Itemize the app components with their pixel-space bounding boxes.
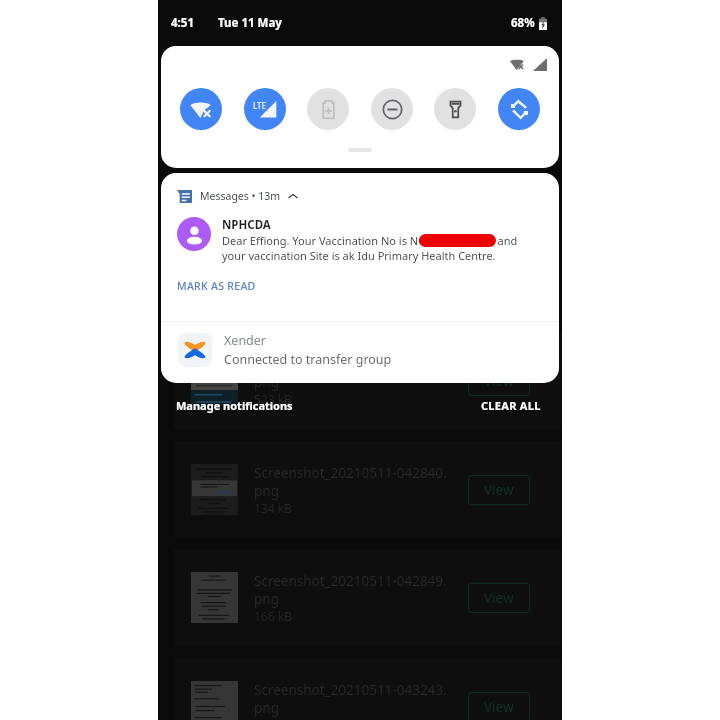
staticText: View (484, 481, 514, 499)
staticText: NPHCDA (222, 217, 271, 233)
staticText: Dear Effiong. Your Vaccination No is NG0… (222, 233, 518, 248)
staticText: Messages • 13m (200, 189, 281, 203)
button[interactable]: View (468, 366, 530, 396)
staticText: png (254, 482, 279, 500)
button[interactable]: CLEAR ALL (481, 398, 541, 413)
button[interactable]: Screenshot_20210511-042849. (174, 549, 562, 646)
staticText: 68% (511, 15, 535, 31)
button[interactable]: Wi-Fi off (180, 88, 222, 130)
button[interactable]: Mobile data LTE (244, 88, 286, 130)
button[interactable]: Manage notifications (176, 398, 293, 413)
staticText: LTE (253, 100, 267, 111)
staticText: MARK AS READ (177, 279, 256, 293)
staticText: 134 kB (254, 500, 292, 516)
staticText: Xender (224, 332, 267, 349)
staticText: Manage notifications (176, 398, 293, 413)
staticText: png (254, 373, 279, 391)
staticText: png (254, 699, 279, 717)
staticText: Screenshot_20210511-042832. (254, 355, 447, 373)
staticText: Screenshot_20210511-042849. (254, 572, 447, 590)
button[interactable]: Screenshot_20210511-042832. (174, 332, 562, 429)
staticText: Screenshot_20210511-043243. (254, 681, 447, 699)
staticText: View (484, 372, 514, 390)
staticText: View (484, 698, 514, 716)
button[interactable]: Flashlight (434, 88, 476, 130)
button[interactable]: Do not disturb (371, 88, 413, 130)
button[interactable]: View (468, 583, 530, 613)
button[interactable]: View (468, 692, 530, 720)
button[interactable]: Battery saver (307, 88, 349, 130)
staticText: 166 kB (254, 608, 292, 624)
staticText: 523 kB (254, 391, 292, 407)
button[interactable]: Screenshot_20210511-043243. (174, 658, 562, 720)
button[interactable]: Xender (161, 322, 559, 383)
button[interactable]: MARK AS READ (171, 276, 262, 296)
staticText: Screenshot_20210511-042840. (254, 464, 447, 482)
staticText: CLEAR ALL (481, 398, 541, 413)
staticText: View (484, 589, 514, 607)
staticText: Connected to transfer group (224, 351, 392, 368)
button[interactable]: Screenshot_20210511-042840. (174, 441, 562, 538)
staticText: your vaccination Site is ak Idu Primary … (222, 248, 496, 263)
staticText: 4:51 (171, 15, 194, 31)
staticText: png (254, 590, 279, 608)
staticText: Tue 11 May (218, 15, 282, 31)
button[interactable]: View (468, 475, 530, 505)
button[interactable]: Auto rotate (498, 88, 540, 130)
button[interactable]: Messages • 13m (177, 178, 559, 214)
